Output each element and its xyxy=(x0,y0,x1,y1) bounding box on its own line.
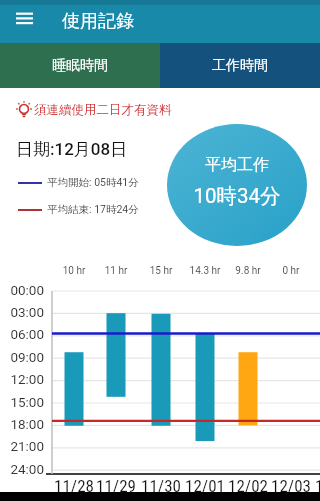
staticText: 9.8 hr xyxy=(223,265,273,277)
staticText: 須連續使用二日才有資料 xyxy=(34,102,172,118)
staticText: 12/01 xyxy=(180,476,230,496)
staticText: 15:00 xyxy=(0,394,44,410)
staticText: 24:00 xyxy=(0,461,44,477)
staticText: 12:00 xyxy=(0,371,44,387)
button[interactable] xyxy=(8,6,42,32)
staticText: 11/29 xyxy=(91,476,141,496)
staticText: 平均工作 xyxy=(167,155,307,175)
staticText: 0 hr xyxy=(266,265,316,277)
staticText: 10 hr xyxy=(49,265,99,277)
staticText: 平均結束: 17時24分 xyxy=(47,203,139,216)
staticText: 21:00 xyxy=(0,438,44,454)
button[interactable]: 工作時間 xyxy=(160,43,320,88)
staticText: 06:00 xyxy=(0,326,44,342)
staticText: 睡眠時間 xyxy=(52,57,108,75)
staticText: 18:00 xyxy=(0,416,44,432)
staticText: 11 hr xyxy=(91,265,141,277)
button[interactable]: 睡眠時間 xyxy=(0,43,160,88)
staticText: 03:00 xyxy=(0,304,44,320)
staticText: 11/30 xyxy=(136,476,186,496)
staticText: 日期:12月08日 xyxy=(16,139,128,160)
staticText: 14.3 hr xyxy=(180,265,230,277)
staticText: 12/04 xyxy=(310,476,320,496)
staticText: 平均開始: 05時41分 xyxy=(47,176,139,189)
staticText: 11/28 xyxy=(49,476,99,496)
staticText: 使用記錄 xyxy=(62,10,134,33)
staticText: 工作時間 xyxy=(212,57,268,75)
staticText: 10時34分 xyxy=(167,183,307,209)
staticText: 12/03 xyxy=(266,476,316,496)
staticText: 00:00 xyxy=(0,282,44,298)
staticText: 12/02 xyxy=(223,476,273,496)
staticText: 15 hr xyxy=(136,265,186,277)
staticText: 09:00 xyxy=(0,349,44,365)
